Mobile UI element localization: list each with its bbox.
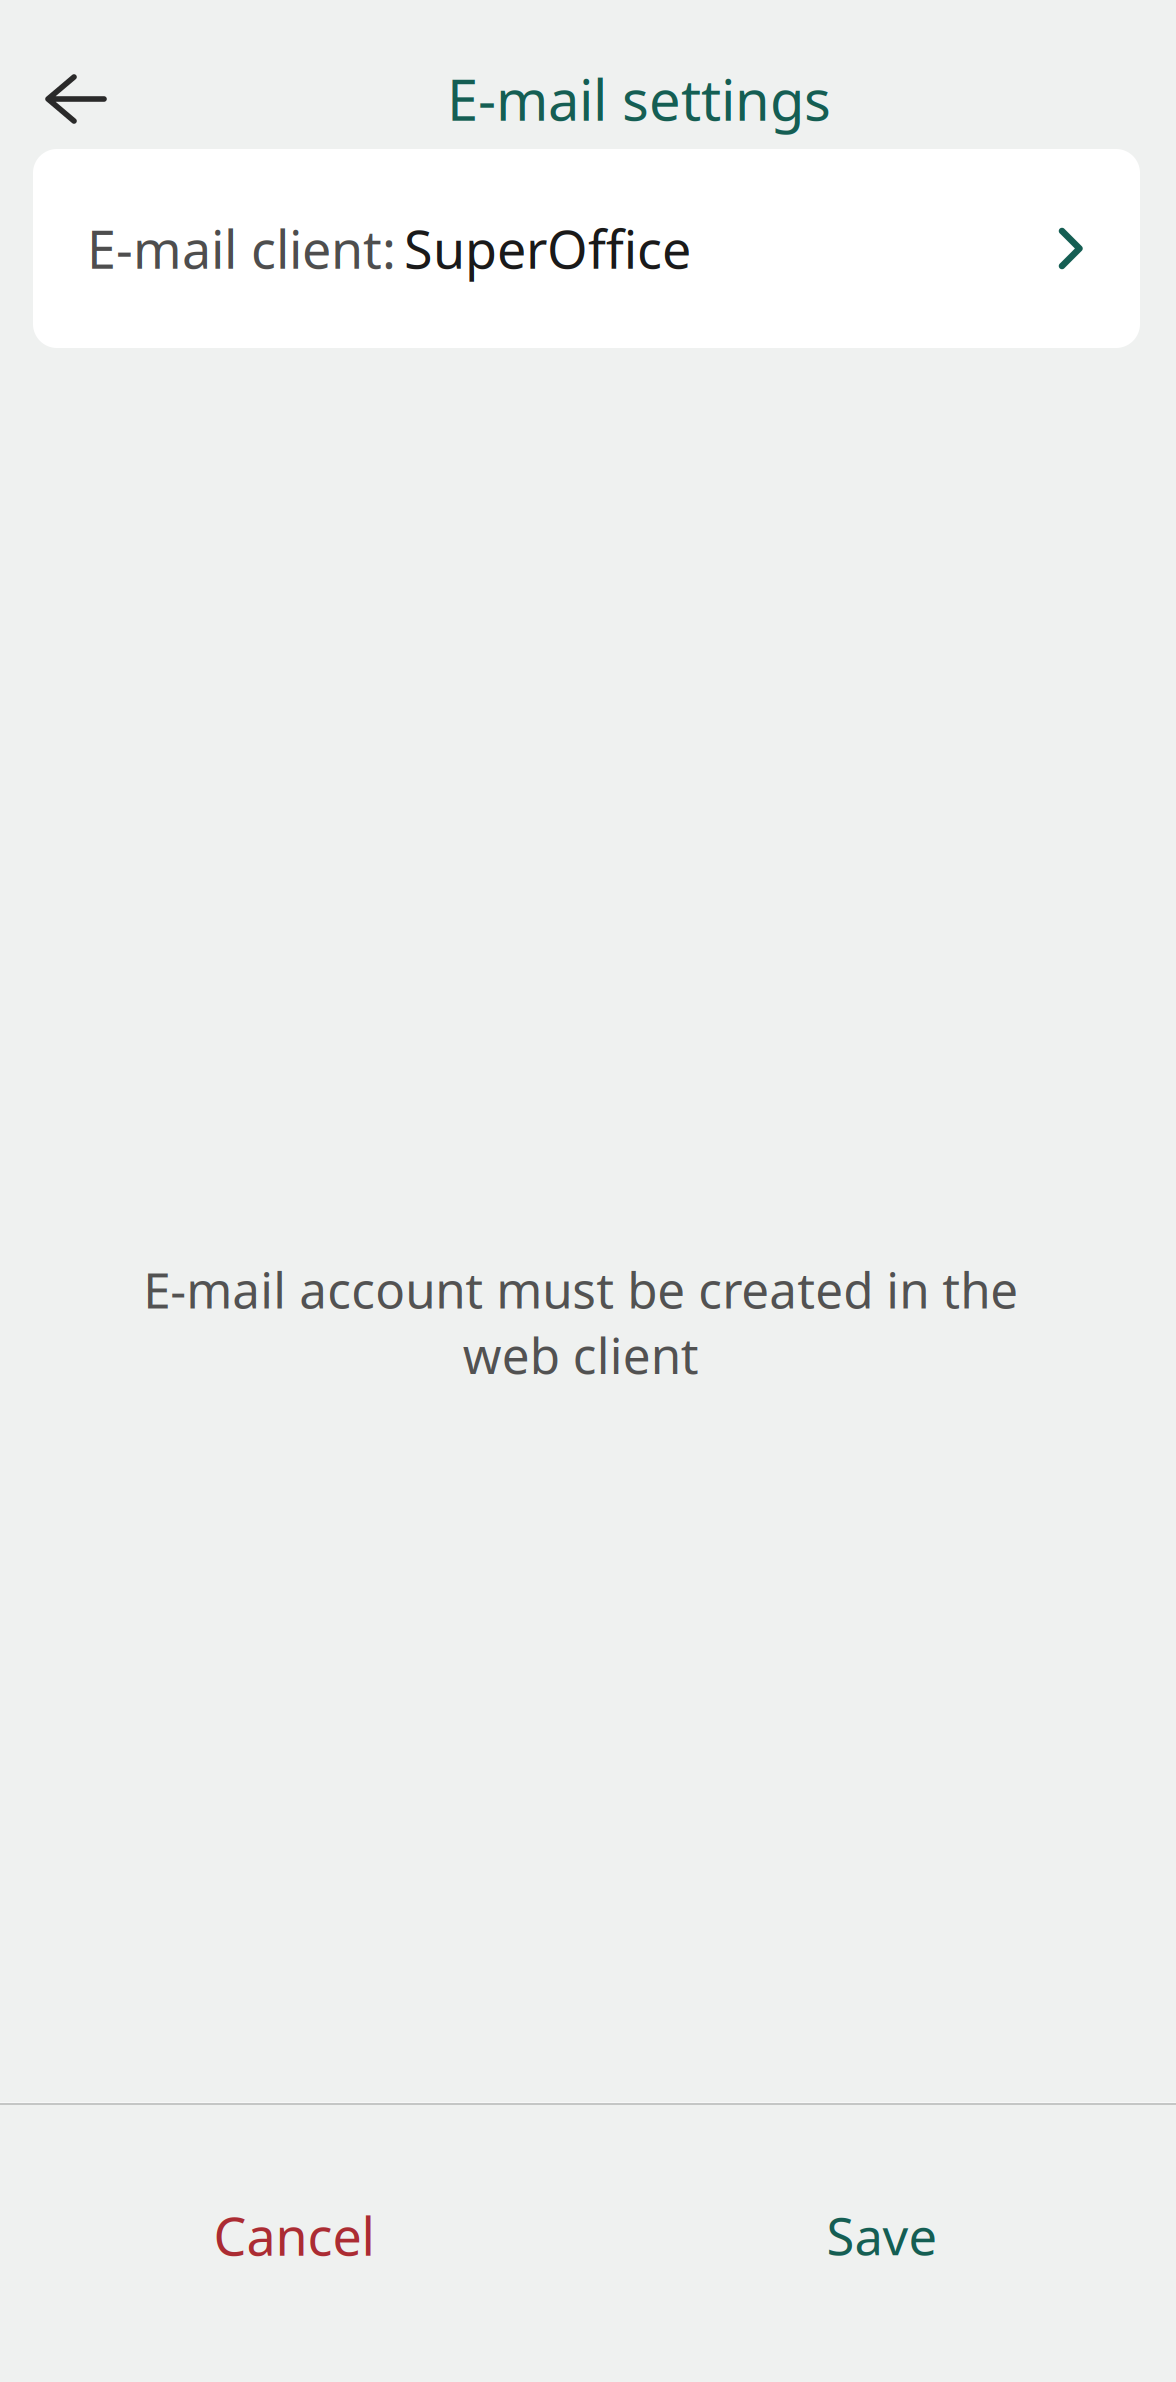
button[interactable]: E-mail client: [33,149,1140,348]
staticText: Cancel [213,2201,374,2270]
staticText: E-mail settings [447,62,831,136]
button[interactable]: Cancel [0,2105,588,2366]
button[interactable]: Back [14,61,110,137]
staticText: SuperOffice [404,214,691,283]
staticText: Save [826,2202,937,2269]
staticText: E-mail client: [87,214,396,283]
button[interactable]: Save [588,2105,1176,2366]
staticText: E-mail account must be created in the we… [143,1256,1018,1387]
